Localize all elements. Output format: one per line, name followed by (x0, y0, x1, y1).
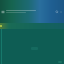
button[interactable]: Menu (1, 10, 5, 14)
button[interactable]: Search (55, 10, 59, 14)
button[interactable]: More options (59, 10, 63, 14)
button[interactable] (58, 61, 62, 63)
